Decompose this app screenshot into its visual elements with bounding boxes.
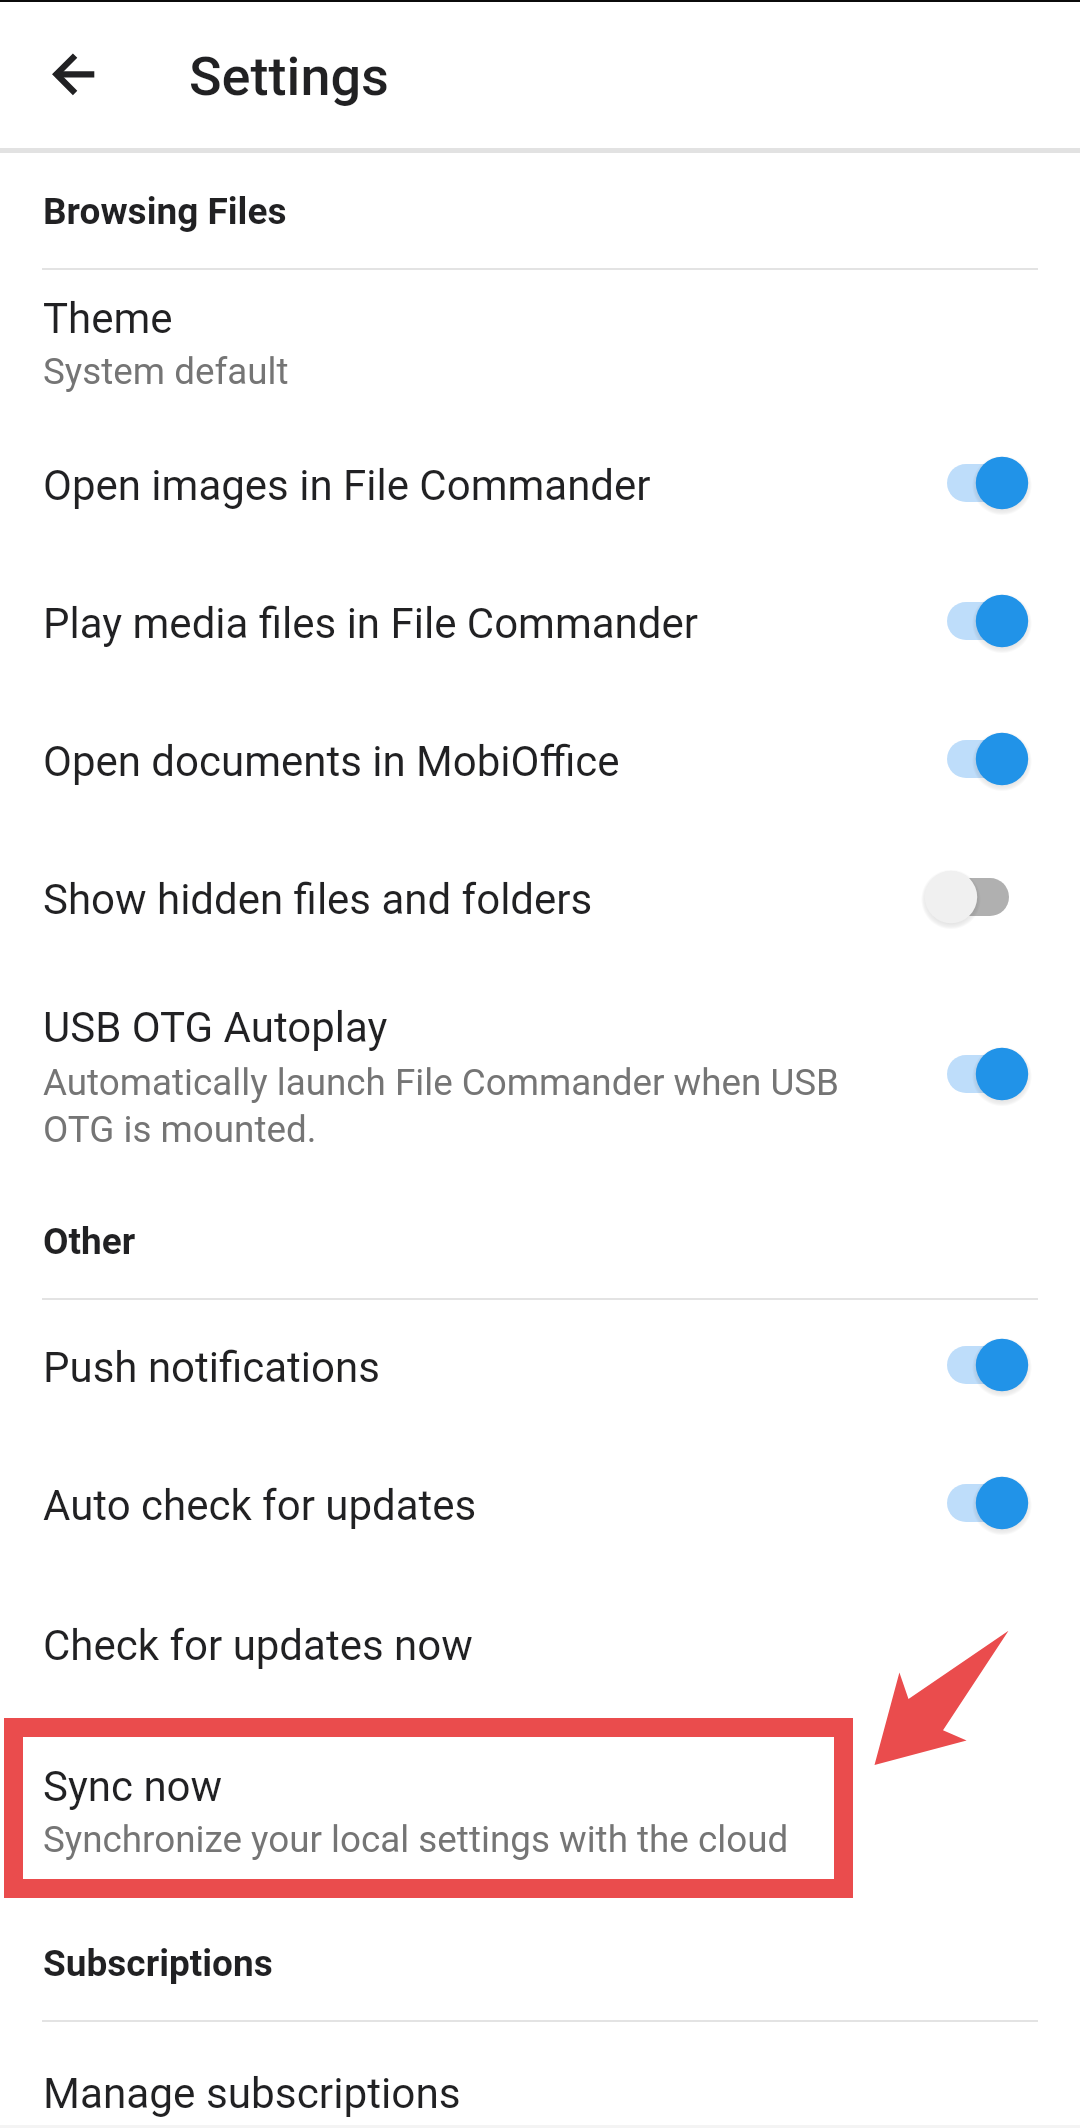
button[interactable]: Play media files in File Commander [0,558,1080,696]
button[interactable]: Open documents in MobiOffice [0,696,1080,834]
staticText: Theme [43,294,173,343]
button[interactable]: Manage subscriptions [0,2034,1080,2128]
button[interactable]: Show hidden files and folders [0,834,1080,972]
button[interactable]: Check for updates now [0,1588,1080,1726]
staticText: Open images in File Commander [43,461,651,510]
button[interactable]: Push notifications [0,1312,1080,1450]
staticText: Sync now [43,1762,223,1811]
staticText: System default [43,350,289,393]
staticText: Push notifications [43,1343,380,1392]
button[interactable]: USB OTG Autoplay [0,972,1080,1168]
staticText: Show hidden files and folders [43,875,593,924]
button[interactable]: Theme [0,282,1080,420]
staticText: Browsing Files [43,190,287,233]
staticText: Manage subscriptions [43,2069,461,2119]
staticText: Check for updates now [43,1621,473,1670]
staticText: Play media files in File Commander [43,599,698,648]
button[interactable]: Navigate up [25,26,121,122]
staticText: Auto check for updates [43,1481,477,1530]
button[interactable]: Open images in File Commander [0,420,1080,558]
button[interactable]: Sync now [0,1726,1080,1888]
staticText: Other [43,1220,136,1263]
button[interactable]: Auto check for updates [0,1450,1080,1588]
staticText: Open documents in MobiOffice [43,737,620,786]
staticText: Settings [189,45,389,108]
staticText: Subscriptions [43,1942,273,1985]
staticText: USB OTG Autoplay [43,1003,388,1052]
staticText: Automatically launch File Commander when… [43,1061,840,1151]
staticText: Synchronize your local settings with the… [43,1818,789,1861]
